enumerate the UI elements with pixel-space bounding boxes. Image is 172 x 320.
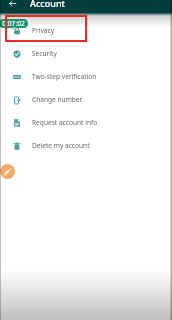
staticText: Privacy (32, 26, 54, 35)
button[interactable]: Delete my account (0, 134, 172, 157)
button[interactable]: Back (8, 0, 17, 8)
button[interactable]: Privacy (0, 19, 172, 42)
button[interactable]: Two-step verification (0, 65, 172, 88)
button[interactable]: Edit (0, 164, 15, 179)
staticText: Two-step verification (32, 72, 97, 81)
staticText: 0:07:02 (2, 19, 25, 28)
staticText: Change number (32, 95, 83, 104)
button[interactable]: Security (0, 42, 172, 65)
staticText: Security (32, 49, 57, 58)
button[interactable]: Change number (0, 88, 172, 111)
staticText: Delete my account (32, 141, 90, 150)
staticText: Request account info (32, 118, 98, 127)
staticText: Account (30, 0, 65, 9)
button[interactable]: Request account info (0, 111, 172, 134)
